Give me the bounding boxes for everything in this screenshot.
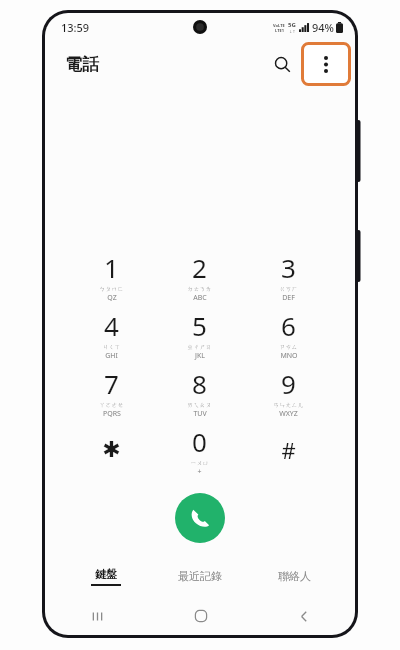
staticText: 8	[192, 366, 207, 401]
staticText: ✱	[102, 437, 121, 463]
button[interactable]: 3	[244, 247, 333, 305]
staticText: ㄚㄛㄜㄝ	[99, 401, 124, 409]
button[interactable]: Home	[149, 601, 252, 631]
button[interactable]: 7	[67, 363, 155, 421]
staticText: 1	[104, 250, 119, 285]
staticText: WXYZ	[279, 409, 298, 419]
button[interactable]: 4	[67, 305, 155, 363]
staticText: LTE1	[275, 28, 284, 33]
button[interactable]: #	[244, 421, 333, 479]
staticText: ㄗㄘㄙ	[279, 343, 298, 351]
button[interactable]: Back	[252, 601, 355, 631]
staticText: 3	[281, 250, 296, 285]
button[interactable]: Search	[263, 45, 301, 83]
staticText: ↓↑	[289, 29, 296, 34]
staticText: ㄧㄨㄩ	[190, 459, 209, 467]
staticText: 94%	[312, 20, 334, 35]
staticText: GHI	[105, 351, 118, 361]
button[interactable]: ✱	[67, 421, 155, 479]
staticText: TUV	[193, 409, 207, 419]
staticText: 13:59	[61, 20, 90, 35]
button[interactable]: More options	[301, 42, 351, 86]
button[interactable]: Call	[175, 493, 225, 543]
staticText: ㄓㄔㄕㄖ	[187, 343, 212, 351]
staticText: ABC	[193, 293, 207, 303]
staticText: VoLTE	[273, 23, 285, 28]
staticText: #	[281, 435, 296, 465]
staticText: 聯絡人	[278, 569, 311, 583]
staticText: ㄐㄑㄒ	[102, 343, 121, 351]
staticText: ㄅㄆㄇㄈ	[99, 285, 124, 293]
staticText: DEF	[282, 293, 295, 303]
staticText: ㄉㄊㄋㄌ	[187, 285, 212, 293]
button[interactable]: 鍵盤	[59, 563, 153, 589]
button[interactable]: 聯絡人	[247, 563, 341, 589]
button[interactable]: 9	[244, 363, 333, 421]
staticText: PQRS	[103, 409, 121, 419]
staticText: JKL	[195, 351, 205, 361]
staticText: ㄢㄣㄤㄥㄦ	[273, 401, 304, 409]
staticText: 7	[104, 366, 119, 401]
staticText: 最近記錄	[178, 569, 222, 583]
button[interactable]: 0	[155, 421, 244, 479]
staticText: ㄞㄟㄠㄡ	[187, 401, 212, 409]
button[interactable]: 8	[155, 363, 244, 421]
button[interactable]: 2	[155, 247, 244, 305]
staticText: 6	[281, 308, 296, 343]
button[interactable]: Recents	[45, 601, 149, 631]
button[interactable]: 最近記錄	[153, 563, 247, 589]
staticText: 0	[192, 424, 207, 459]
staticText: 電話	[65, 54, 99, 75]
staticText: 9	[281, 366, 296, 401]
staticText: 鍵盤	[95, 567, 117, 581]
staticText: 5G	[288, 21, 296, 29]
staticText: 4	[104, 308, 119, 343]
button[interactable]: 5	[155, 305, 244, 363]
button[interactable]: 1	[67, 247, 155, 305]
staticText: QZ	[107, 293, 117, 303]
button[interactable]: 6	[244, 305, 333, 363]
staticText: MNO	[280, 351, 298, 361]
staticText: 2	[192, 250, 207, 285]
staticText: +	[197, 467, 202, 477]
staticText: ㄍㄎㄏ	[279, 285, 298, 293]
staticText: 5	[192, 308, 207, 343]
